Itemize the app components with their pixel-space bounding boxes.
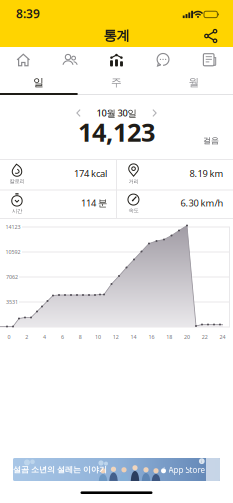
button[interactable]: 뉴스 — [186, 47, 233, 73]
button[interactable]: 통계 — [93, 47, 140, 73]
staticText: 22 — [202, 333, 208, 341]
button[interactable]: 친구 — [47, 47, 93, 73]
staticText: 0 — [7, 333, 10, 341]
staticText: 10 — [95, 333, 101, 341]
staticText: 3531 — [6, 298, 18, 306]
button[interactable]: 채팅 — [140, 47, 186, 73]
staticText: 7062 — [6, 273, 18, 281]
staticText: 114 분 — [81, 197, 107, 209]
button[interactable]: 주 — [78, 73, 155, 92]
button[interactable]: 월 — [155, 73, 233, 92]
staticText: 14,123 — [78, 115, 155, 149]
staticText: 8.19 km — [189, 167, 223, 179]
staticText: 거리 — [128, 178, 138, 185]
staticText: 24 — [220, 333, 226, 341]
staticText: 4 — [43, 333, 46, 341]
staticText: 주 — [111, 76, 122, 89]
staticText: 12 — [113, 333, 119, 341]
staticText: 일 — [33, 76, 44, 89]
staticText: 8 — [79, 333, 82, 341]
staticText: 18 — [166, 333, 172, 341]
button[interactable]: 광고: 설곰 소년의 설레는 이야기 - App Store — [13, 458, 220, 481]
staticText: 칼로리 — [9, 178, 24, 184]
button[interactable]: 일 — [0, 73, 78, 92]
staticText: 14123 — [5, 223, 20, 231]
staticText: 8:39 — [16, 6, 40, 21]
staticText: 걸음 — [203, 136, 219, 145]
button[interactable]: 이전 날짜 — [73, 107, 83, 119]
staticText: 10592 — [5, 248, 20, 256]
staticText: 14 — [131, 333, 137, 341]
button[interactable]: 다음 날짜 — [149, 107, 159, 119]
staticText: 시간 — [12, 208, 22, 214]
staticText: 속도 — [128, 207, 138, 214]
staticText: 월 — [188, 76, 199, 89]
staticText: 20 — [184, 333, 190, 341]
button[interactable]: 홈 — [0, 47, 47, 73]
staticText: 10월 30일 — [96, 107, 136, 119]
button[interactable]: 공유 — [200, 25, 222, 47]
staticText: 2 — [25, 333, 28, 341]
staticText: 6 — [61, 333, 64, 341]
staticText: 통계 — [103, 27, 129, 44]
staticText: 6.30 km/h — [180, 197, 223, 209]
staticText: 설곰 소년의 설레는 이야기 — [13, 465, 107, 474]
staticText: 174 kcal — [74, 167, 107, 179]
staticText: 16 — [148, 333, 154, 341]
staticText: App Store — [168, 465, 205, 475]
staticText: i — [201, 458, 202, 465]
